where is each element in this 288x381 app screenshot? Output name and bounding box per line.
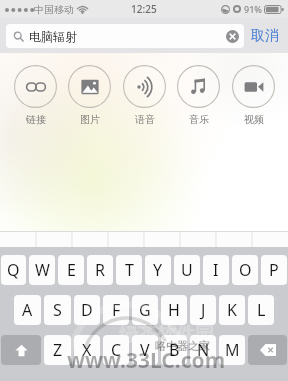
- button[interactable]: S: [44, 295, 71, 325]
- button[interactable]: W: [29, 255, 55, 285]
- button[interactable]: A: [14, 295, 41, 325]
- staticText: 12:25: [131, 2, 157, 16]
- staticText: www.33LC.com: [67, 346, 226, 375]
- button[interactable]: Q: [1, 255, 26, 285]
- button[interactable]: Clear text: [226, 30, 239, 43]
- button[interactable]: Backspace: [248, 335, 287, 365]
- staticText: 中国移动: [34, 3, 74, 16]
- button[interactable]: Y: [145, 255, 171, 285]
- button[interactable]: D: [74, 295, 100, 325]
- button[interactable]: 音乐: [174, 64, 223, 127]
- staticText: D: [81, 299, 93, 321]
- button[interactable]: X: [74, 335, 100, 365]
- staticText: X: [82, 339, 92, 361]
- button[interactable]: 链接: [11, 64, 60, 127]
- button[interactable]: G: [132, 295, 158, 325]
- staticText: M: [225, 339, 240, 361]
- staticText: 91%: [244, 3, 262, 15]
- staticText: A: [22, 299, 33, 321]
- staticText: R: [95, 259, 105, 281]
- staticText: 语音: [135, 113, 155, 126]
- staticText: P: [269, 259, 279, 281]
- staticText: 视频: [244, 113, 264, 126]
- staticText: Z: [53, 339, 63, 361]
- button[interactable]: F: [103, 295, 129, 325]
- button[interactable]: V: [132, 335, 158, 365]
- button[interactable]: B: [161, 335, 187, 365]
- staticText: U: [181, 259, 193, 281]
- button[interactable]: 图片: [65, 64, 114, 127]
- staticText: H: [168, 299, 180, 321]
- button[interactable]: Z: [44, 335, 71, 365]
- staticText: L: [257, 299, 266, 321]
- button[interactable]: 取消: [249, 23, 281, 49]
- button[interactable]: C: [103, 335, 129, 365]
- button[interactable]: Shift: [1, 335, 41, 365]
- staticText: 链接: [26, 113, 46, 126]
- staticText: Q: [7, 259, 20, 281]
- staticText: 咯中器之家: [155, 339, 210, 353]
- button[interactable]: N: [190, 335, 216, 365]
- button[interactable]: H: [161, 295, 187, 325]
- staticText: 电脑辐射: [29, 29, 77, 44]
- button[interactable]: J: [190, 295, 216, 325]
- staticText: F: [112, 299, 121, 321]
- staticText: B: [169, 339, 180, 361]
- staticText: 取消: [251, 27, 279, 45]
- staticText: C: [111, 339, 122, 361]
- button[interactable]: O: [232, 255, 258, 285]
- button[interactable]: T: [116, 255, 142, 285]
- staticText: S: [53, 299, 62, 321]
- staticText: J: [201, 299, 206, 321]
- button[interactable]: P: [261, 255, 287, 285]
- button[interactable]: 语音: [120, 64, 169, 127]
- button[interactable]: R: [87, 255, 113, 285]
- staticText: 音乐: [189, 113, 209, 126]
- staticText: T: [125, 259, 134, 281]
- staticText: Y: [153, 259, 163, 281]
- button[interactable]: E: [58, 255, 84, 285]
- staticText: 绿茶软件园: [119, 323, 214, 347]
- staticText: 图片: [80, 113, 100, 126]
- staticText: G: [139, 299, 151, 321]
- staticText: O: [239, 259, 252, 281]
- staticText: N: [197, 339, 210, 361]
- button[interactable]: L: [248, 295, 274, 325]
- staticText: K: [227, 299, 237, 321]
- staticText: W: [35, 259, 50, 281]
- staticText: E: [67, 259, 76, 281]
- button[interactable]: M: [219, 335, 245, 365]
- button[interactable]: K: [219, 295, 245, 325]
- staticText: V: [140, 339, 150, 361]
- button[interactable]: 视频: [229, 64, 278, 127]
- button[interactable]: 电脑辐射: [6, 24, 244, 48]
- button[interactable]: I: [203, 255, 229, 285]
- button[interactable]: U: [174, 255, 200, 285]
- staticText: I: [213, 259, 219, 281]
